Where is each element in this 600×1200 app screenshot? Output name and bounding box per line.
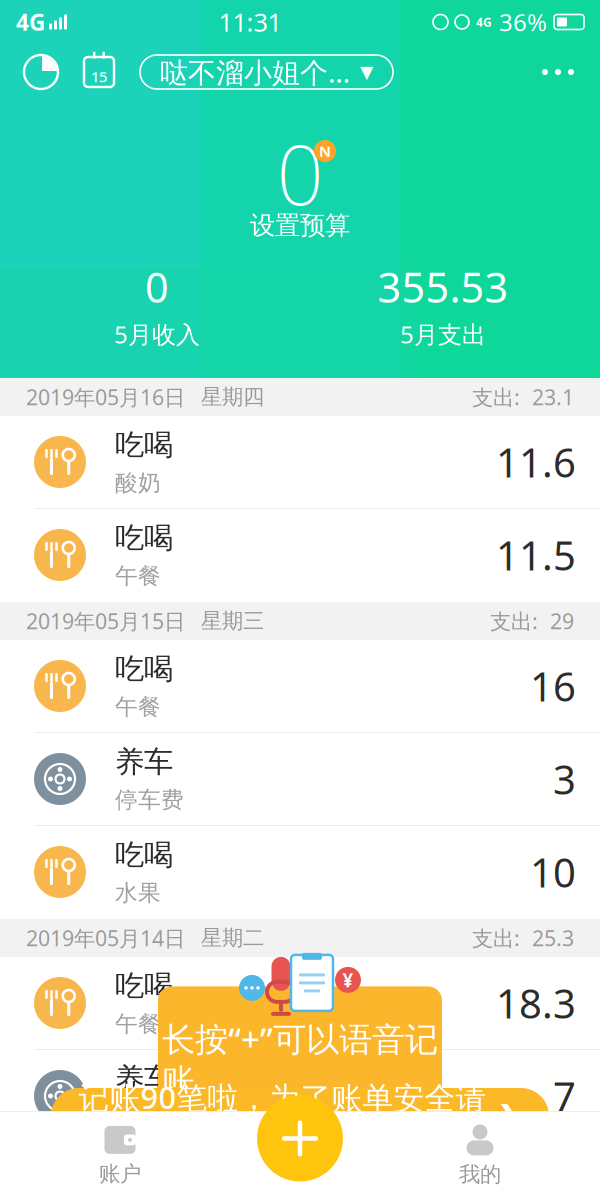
staticText: 5月支出 [400,318,486,350]
staticText: 4G [476,14,492,30]
button[interactable]: 吃喝 [0,416,600,509]
staticText: 3 [553,752,576,805]
staticText: 11.6 [496,435,576,488]
staticText: 吃喝 [115,427,173,463]
button[interactable]: 账户 [0,1112,240,1200]
staticText: 长按“+”可以语音记账 [162,1016,438,1102]
staticText: 7 [553,1069,576,1122]
staticText: 吃喝 [115,968,173,1004]
button[interactable]: Statistics [12,44,70,100]
staticText: 哒不溜小姐个… [160,53,350,91]
staticText: 11.5 [496,528,576,581]
staticText: 吃喝 [115,651,173,687]
staticText: 16 [530,659,576,712]
staticText: 吃喝 [115,520,173,556]
button[interactable]: 0 [14,259,300,350]
button[interactable]: Calendar [70,44,128,100]
staticText: 吃喝 [115,837,173,873]
staticText: 我的 [459,1161,501,1188]
staticText: 支出: 29 [490,607,574,635]
staticText: 午餐 [115,1010,161,1038]
staticText: 水果 [115,879,161,907]
staticText: 账户 [99,1161,141,1187]
button[interactable]: 养车 [0,1050,600,1143]
staticText: 355.53 [377,259,508,314]
button[interactable]: 355.53 [300,259,586,350]
staticText: 停车费 [115,786,184,814]
staticText: 2019年05月14日 [26,924,185,952]
staticText: 5月收入 [114,318,200,350]
staticText: 星期四 [201,384,264,410]
staticText: ▼ [360,62,373,82]
staticText: 15 [91,67,107,86]
staticText: 支出: 25.3 [472,924,574,952]
staticText: ¥ [342,967,353,992]
staticText: ❯ [496,1099,521,1133]
staticText: 2019年05月16日 [26,383,185,411]
button[interactable]: 吃喝 [0,957,600,1050]
button[interactable]: 哒不溜小姐个… [140,55,393,89]
button[interactable]: 养车 [0,733,600,826]
staticText: 0 [276,118,323,228]
staticText: 10 [530,845,576,898]
button[interactable]: 0 [190,138,410,241]
button[interactable]: 吃喝 [0,509,600,602]
staticText: 4G [16,7,45,37]
staticText: 午餐 [115,562,161,590]
staticText: 设置预算 [250,210,350,241]
staticText: 养车 [115,1061,173,1097]
staticText: 养车 [115,744,173,780]
button[interactable]: 吃喝 [0,640,600,733]
staticText: 支出: 23.1 [472,383,574,411]
staticText: 0 [145,259,169,314]
staticText: 记账90笔啦，为了账单安全请绑定手机号 [78,1077,486,1155]
staticText: 11:31 [218,5,281,39]
button[interactable]: 吃喝 [0,826,600,919]
button[interactable]: Add record [254,1092,346,1184]
button[interactable]: 记账90笔啦，为了账单安全请绑定手机号 [51,1088,549,1144]
staticText: 18.3 [496,976,576,1029]
button[interactable]: More [528,44,588,100]
staticText: N [319,141,331,161]
staticText: 午餐 [115,693,161,721]
staticText: 停车费 [115,1103,184,1131]
button[interactable]: 我的 [360,1112,600,1200]
staticText: 星期三 [201,608,264,634]
staticText: 星期二 [201,925,264,951]
staticText: 酸奶 [115,469,161,497]
staticText: 2019年05月15日 [26,607,185,635]
staticText: 36% [499,6,547,38]
